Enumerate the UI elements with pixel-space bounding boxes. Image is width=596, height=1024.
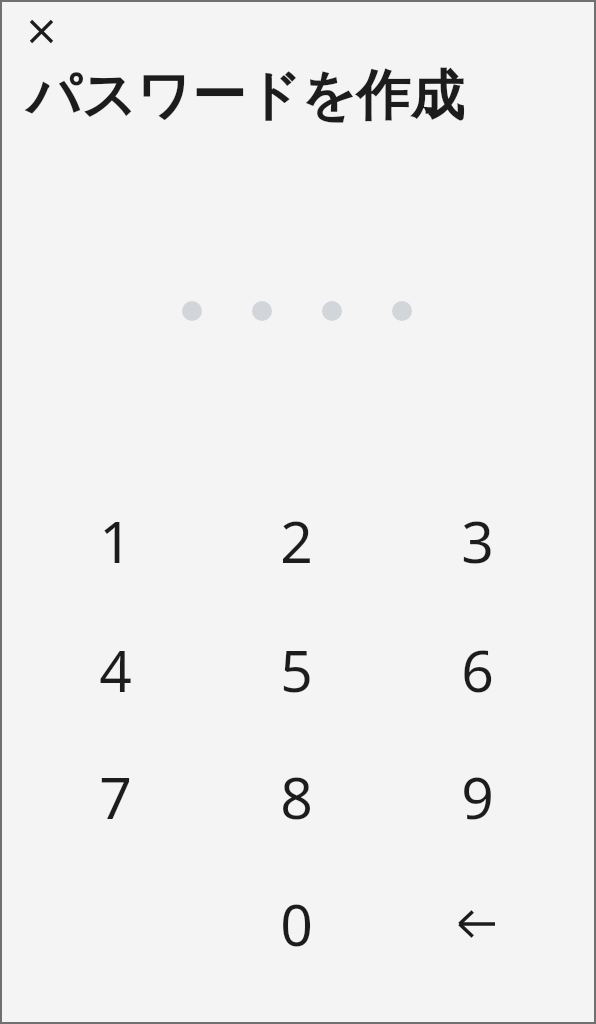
button[interactable]: 5 [236,610,356,730]
staticText: パスワードを作成 [26,62,465,130]
staticText: 0 [280,885,313,963]
button[interactable]: 8 [236,737,356,857]
button[interactable]: 6 [417,610,537,730]
staticText: 5 [280,631,313,709]
staticText: 7 [99,758,132,836]
button[interactable]: 9 [417,737,537,857]
staticText: 1 [99,502,132,580]
button[interactable]: 閉じる [13,3,69,59]
staticText: 6 [461,631,494,709]
staticText: 3 [461,502,494,580]
staticText: 9 [461,758,494,836]
staticText: 8 [280,758,313,836]
button[interactable]: 1 [55,481,175,601]
staticText: 4 [99,631,132,709]
button[interactable]: 2 [236,481,356,601]
button[interactable]: 4 [55,610,175,730]
button[interactable]: 削除 [417,864,537,984]
button[interactable]: 7 [55,737,175,857]
staticText: 2 [280,502,313,580]
button[interactable]: 0 [236,864,356,984]
button[interactable]: 3 [417,481,537,601]
